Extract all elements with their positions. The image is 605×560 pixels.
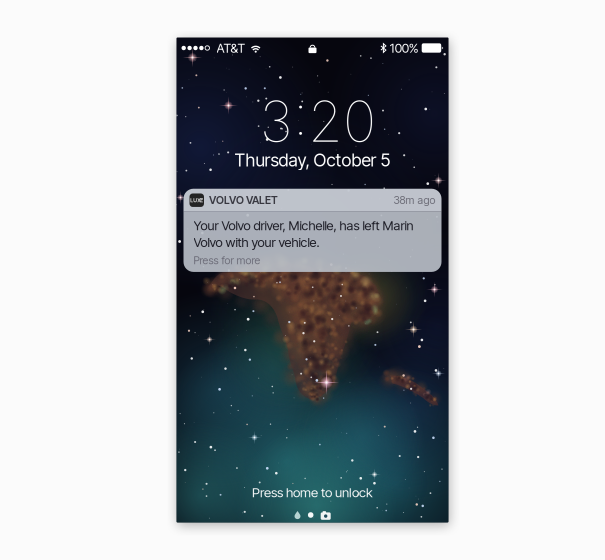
- staticText: Press for more: [193, 254, 260, 267]
- staticText: Your Volvo driver, Michelle, has left Ma…: [193, 218, 413, 233]
- button[interactable]: Flashlight: [294, 511, 301, 519]
- staticText: AT&T: [216, 40, 245, 56]
- staticText: VOLVO VALET: [209, 194, 278, 207]
- staticText: Thursday, October 5: [234, 149, 390, 171]
- staticText: Press home to unlock: [252, 484, 373, 500]
- button[interactable]: LUXE: [183, 189, 441, 272]
- staticText: 100%: [390, 40, 419, 56]
- staticText: 38m ago: [393, 194, 435, 207]
- staticText: Volvo with your vehicle.: [193, 234, 319, 250]
- button[interactable]: Camera: [320, 511, 331, 519]
- staticText: 3:20: [259, 87, 376, 155]
- staticText: LUXE: [190, 197, 203, 203]
